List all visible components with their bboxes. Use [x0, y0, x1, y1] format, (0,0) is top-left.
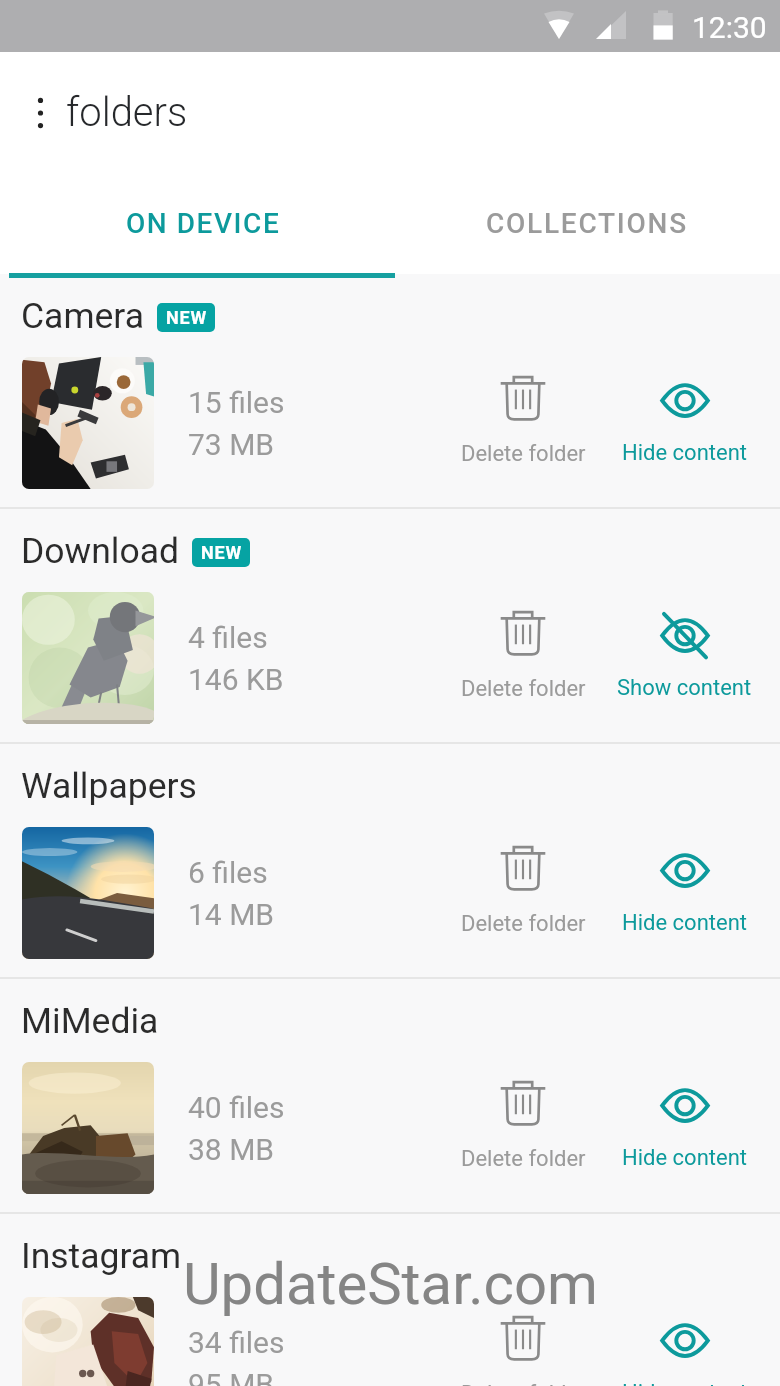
staticText: 15 files [188, 385, 285, 420]
button[interactable]: Delete folder [457, 1078, 589, 1172]
staticText: 40 files [188, 1090, 285, 1125]
button[interactable]: ON DEVICE [0, 172, 390, 274]
staticText: 146 KB [188, 662, 284, 697]
button[interactable]: Hide content [589, 1078, 780, 1171]
button[interactable]: More options [35, 95, 46, 131]
staticText: 95 MB [188, 1367, 275, 1386]
other: Delete folder [500, 608, 546, 656]
button[interactable]: Show content [589, 608, 780, 701]
staticText: 34 files [188, 1325, 285, 1360]
staticText: Show content [617, 675, 752, 701]
button[interactable]: Delete folder [457, 843, 589, 937]
staticText: Download [21, 530, 180, 572]
staticText: folders [66, 89, 188, 136]
button[interactable]: Camera [0, 274, 780, 507]
staticText: Hide content [622, 440, 747, 466]
button[interactable]: Instagram [0, 1214, 780, 1386]
staticText: NEW [201, 542, 242, 563]
staticText: UpdateStar.com [183, 1250, 598, 1318]
staticText: 6 files [188, 855, 268, 890]
other: Delete folder [500, 1313, 546, 1361]
button[interactable]: Delete folder [457, 608, 589, 702]
staticText: Wallpapers [21, 765, 197, 807]
staticText: Hide content [622, 1145, 747, 1171]
staticText: 12:30 [692, 10, 767, 45]
button[interactable]: Delete folder [457, 1313, 589, 1386]
button[interactable]: Hide content [589, 373, 780, 466]
other: Hide content [659, 1078, 711, 1124]
staticText: 4 files [188, 620, 268, 655]
staticText: Instagram [21, 1235, 182, 1277]
button[interactable]: Hide content [589, 1313, 780, 1386]
staticText: Camera [21, 295, 145, 337]
button[interactable]: COLLECTIONS [390, 172, 780, 274]
staticText: 38 MB [188, 1132, 275, 1167]
button[interactable]: Delete folder [457, 373, 589, 467]
other: Show content [659, 608, 711, 654]
button[interactable]: MiMedia [0, 979, 780, 1212]
staticText: 73 MB [188, 427, 275, 462]
staticText: NEW [166, 307, 207, 328]
button[interactable]: Wallpapers [0, 744, 780, 977]
other: Hide content [659, 1313, 711, 1359]
staticText: Delete folder [461, 1146, 586, 1172]
staticText: COLLECTIONS [486, 207, 688, 240]
staticText: Delete folder [461, 1381, 586, 1386]
staticText: Delete folder [461, 676, 586, 702]
staticText: MiMedia [21, 1000, 159, 1042]
other: Delete folder [500, 1078, 546, 1126]
other: Delete folder [500, 373, 546, 421]
button[interactable]: Hide content [589, 843, 780, 936]
button[interactable]: Download [0, 509, 780, 742]
other: Delete folder [500, 843, 546, 891]
staticText: Hide content [622, 910, 747, 936]
staticText: Hide content [622, 1380, 747, 1386]
staticText: Delete folder [461, 911, 586, 937]
staticText: Delete folder [461, 441, 586, 467]
staticText: ON DEVICE [126, 207, 281, 240]
staticText: 14 MB [188, 897, 275, 932]
other: Hide content [659, 373, 711, 419]
other: Hide content [659, 843, 711, 889]
